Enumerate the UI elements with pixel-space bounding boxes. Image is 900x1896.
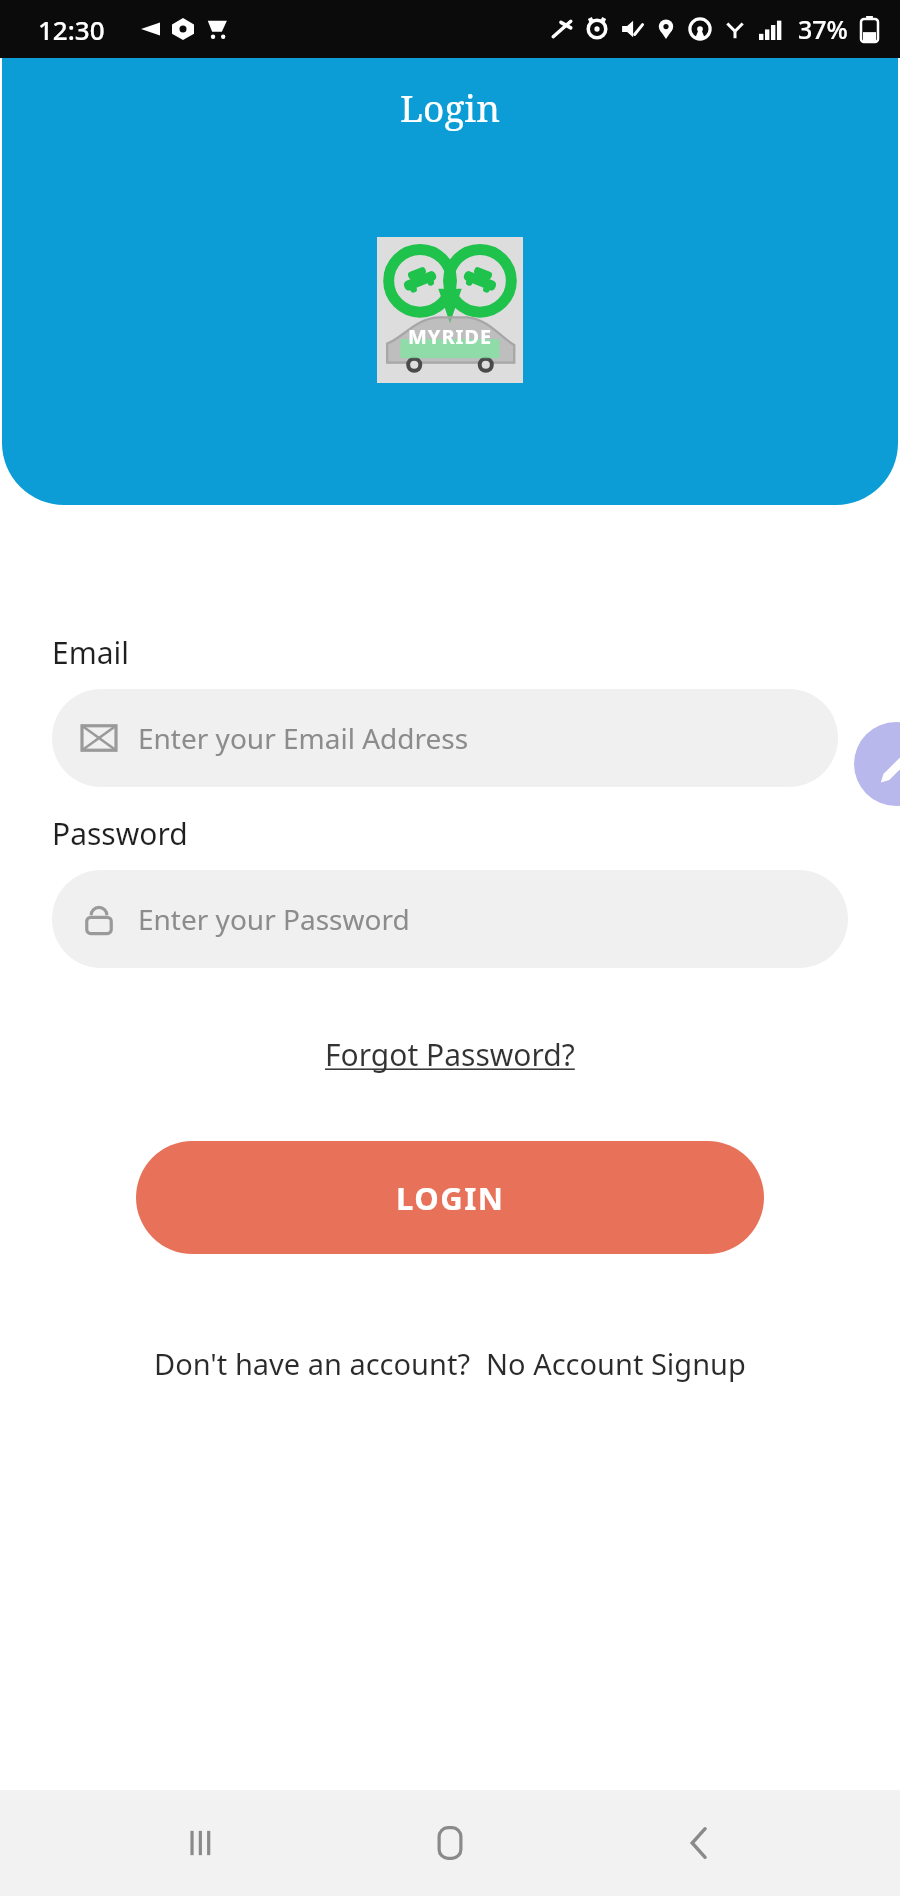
staticText: Enter your Email Address [138, 719, 469, 757]
button[interactable]: Recents [153, 1795, 249, 1891]
button[interactable]: Back [651, 1795, 747, 1891]
staticText: 12:30 [38, 12, 105, 47]
staticText: 37% [798, 12, 848, 46]
staticText: No Account Signup [486, 1344, 746, 1383]
button[interactable]: Edit email [854, 722, 900, 806]
staticText: Password [52, 813, 188, 854]
button[interactable]: Enter your Email Address [52, 689, 838, 787]
staticText: Enter your Password [138, 900, 410, 938]
staticText: LOGIN [396, 1177, 505, 1219]
button[interactable]: Forgot Password? [317, 1030, 583, 1079]
button[interactable]: Enter your Password [52, 870, 848, 968]
button[interactable]: Don't have an account? [148, 1340, 752, 1387]
button[interactable]: Home [402, 1795, 498, 1891]
staticText: Login [400, 82, 501, 132]
staticText: Forgot Password? [325, 1034, 575, 1075]
button[interactable]: LOGIN [136, 1141, 764, 1254]
staticText: MYRIDE [408, 323, 493, 350]
staticText: Don't have an account? [154, 1344, 470, 1383]
staticText: Email [52, 632, 130, 673]
